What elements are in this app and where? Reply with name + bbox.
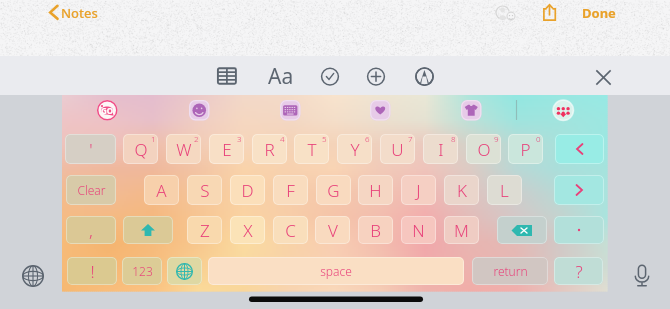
- button[interactable]: More apps: [553, 100, 574, 121]
- staticText: I: [438, 138, 444, 161]
- staticText: A: [156, 179, 167, 202]
- staticText: E: [222, 138, 232, 161]
- button[interactable]: R: [252, 134, 287, 164]
- staticText: O: [477, 138, 491, 161]
- staticText: W: [176, 138, 192, 161]
- button[interactable]: V: [315, 216, 350, 244]
- button[interactable]: space: [208, 257, 464, 285]
- button[interactable]: I: [423, 134, 458, 164]
- button[interactable]: K: [444, 175, 479, 205]
- button[interactable]: P: [508, 134, 543, 164]
- button[interactable]: Favourites: [370, 100, 391, 121]
- button[interactable]: [554, 175, 604, 205]
- staticText: Aa: [268, 62, 294, 88]
- staticText: K: [457, 179, 467, 202]
- button[interactable]: U: [380, 134, 415, 164]
- button[interactable]: Z: [187, 216, 222, 244]
- staticText: 0: [536, 134, 541, 144]
- staticText: 9: [494, 134, 499, 144]
- button[interactable]: [123, 216, 173, 244]
- staticText: Done: [582, 4, 616, 22]
- staticText: ': [89, 138, 93, 161]
- staticText: S: [200, 179, 210, 202]
- staticText: B: [370, 219, 381, 242]
- button[interactable]: E: [209, 134, 244, 164]
- button[interactable]: Keyboards: [280, 100, 301, 121]
- staticText: J: [416, 179, 421, 202]
- staticText: D: [241, 179, 254, 202]
- button[interactable]: W: [166, 134, 201, 164]
- staticText: Q: [134, 138, 148, 161]
- button[interactable]: ,: [66, 216, 116, 244]
- button[interactable]: Switch keyboard: [22, 265, 44, 287]
- button[interactable]: Q: [123, 134, 158, 164]
- button[interactable]: Table: [217, 67, 237, 85]
- staticText: P: [520, 138, 531, 161]
- button[interactable]: ': [65, 134, 116, 164]
- button[interactable]: F: [273, 175, 308, 205]
- button[interactable]: !: [67, 257, 117, 285]
- staticText: 123: [132, 263, 153, 279]
- staticText: Notes: [61, 4, 98, 22]
- button[interactable]: Close: [596, 70, 611, 85]
- staticText: !: [90, 260, 95, 283]
- button[interactable]: Checklist: [321, 67, 339, 86]
- button[interactable]: C: [273, 216, 308, 244]
- button[interactable]: H: [358, 175, 393, 205]
- button[interactable]: Aa: [268, 62, 294, 88]
- button[interactable]: [497, 216, 547, 244]
- staticText: Clear: [77, 182, 106, 198]
- button[interactable]: O: [466, 134, 501, 164]
- staticText: M: [454, 219, 469, 242]
- button[interactable]: T: [294, 134, 329, 164]
- button[interactable]: [554, 216, 604, 244]
- staticText: 4: [280, 134, 285, 144]
- button[interactable]: Collaborate: [492, 2, 518, 24]
- button[interactable]: Add attachment: [367, 67, 385, 86]
- staticText: 3: [237, 134, 242, 144]
- staticText: N: [412, 219, 425, 242]
- staticText: R: [264, 138, 275, 161]
- button[interactable]: Markup: [415, 67, 434, 86]
- button[interactable]: X: [230, 216, 265, 244]
- staticText: Y: [350, 138, 360, 161]
- staticText: G: [327, 179, 340, 202]
- staticText: U: [391, 138, 404, 161]
- staticText: T: [307, 138, 317, 161]
- staticText: F: [286, 179, 295, 202]
- button[interactable]: Notes: [46, 2, 104, 24]
- button[interactable]: Clear: [66, 175, 116, 205]
- button[interactable]: return: [472, 257, 548, 285]
- button[interactable]: Share: [542, 2, 558, 24]
- staticText: 8: [451, 134, 456, 144]
- staticText: ?: [575, 260, 583, 283]
- staticText: 2: [194, 134, 199, 144]
- button[interactable]: B: [358, 216, 393, 244]
- staticText: Z: [200, 219, 210, 242]
- button[interactable]: Y: [337, 134, 372, 164]
- staticText: 6: [365, 134, 370, 144]
- staticText: V: [328, 219, 338, 242]
- button[interactable]: Stickers: [189, 100, 210, 121]
- button[interactable]: Dictate: [632, 264, 652, 288]
- staticText: ,: [89, 219, 93, 242]
- button[interactable]: S: [187, 175, 222, 205]
- button[interactable]: ?: [554, 257, 603, 285]
- button[interactable]: N: [401, 216, 436, 244]
- button[interactable]: 123: [122, 257, 162, 285]
- button[interactable]: [167, 257, 202, 285]
- button[interactable]: G: [316, 175, 351, 205]
- button[interactable]: [555, 134, 604, 164]
- staticText: 7: [408, 134, 413, 144]
- button[interactable]: L: [487, 175, 522, 205]
- staticText: 5: [322, 134, 327, 144]
- button[interactable]: GO app: [97, 100, 118, 121]
- button[interactable]: M: [444, 216, 479, 244]
- button[interactable]: A: [144, 175, 179, 205]
- staticText: GO: [101, 105, 114, 116]
- button[interactable]: Done: [580, 2, 620, 24]
- button[interactable]: J: [401, 175, 436, 205]
- button[interactable]: Store: [461, 100, 482, 121]
- button[interactable]: D: [230, 175, 265, 205]
- staticText: space: [320, 263, 352, 279]
